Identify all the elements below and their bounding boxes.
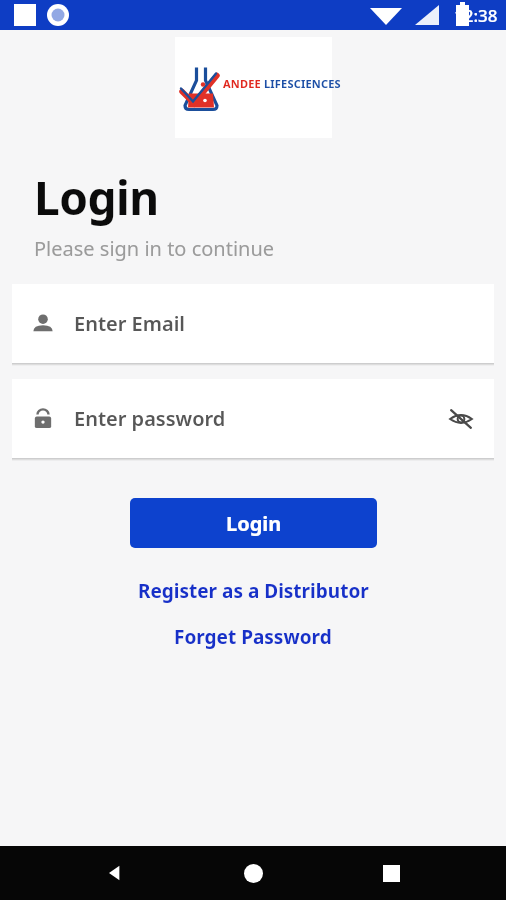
- staticText: Please sign in to continue: [34, 235, 275, 262]
- staticText: Forget Password: [174, 624, 332, 650]
- button[interactable]: Enter password: [12, 379, 494, 458]
- button[interactable]: Back: [92, 850, 138, 896]
- button[interactable]: Home: [230, 850, 276, 896]
- button[interactable]: Recent apps: [368, 850, 414, 896]
- staticText: Login: [34, 166, 159, 229]
- staticText: Login: [226, 510, 282, 537]
- button[interactable]: Toggle password visibility: [446, 404, 476, 434]
- staticText: Register as a Distributor: [138, 578, 369, 604]
- button[interactable]: Login: [130, 498, 377, 548]
- button[interactable]: Register as a Distributor: [128, 576, 379, 606]
- staticText: 12:38: [454, 4, 498, 27]
- staticText: Enter Email: [74, 310, 185, 337]
- button[interactable]: Forget Password: [164, 622, 342, 652]
- button[interactable]: Enter Email: [12, 284, 494, 363]
- staticText: LIFESCIENCES: [264, 76, 341, 91]
- staticText: ANDEE: [223, 76, 264, 91]
- staticText: Enter password: [74, 405, 226, 432]
